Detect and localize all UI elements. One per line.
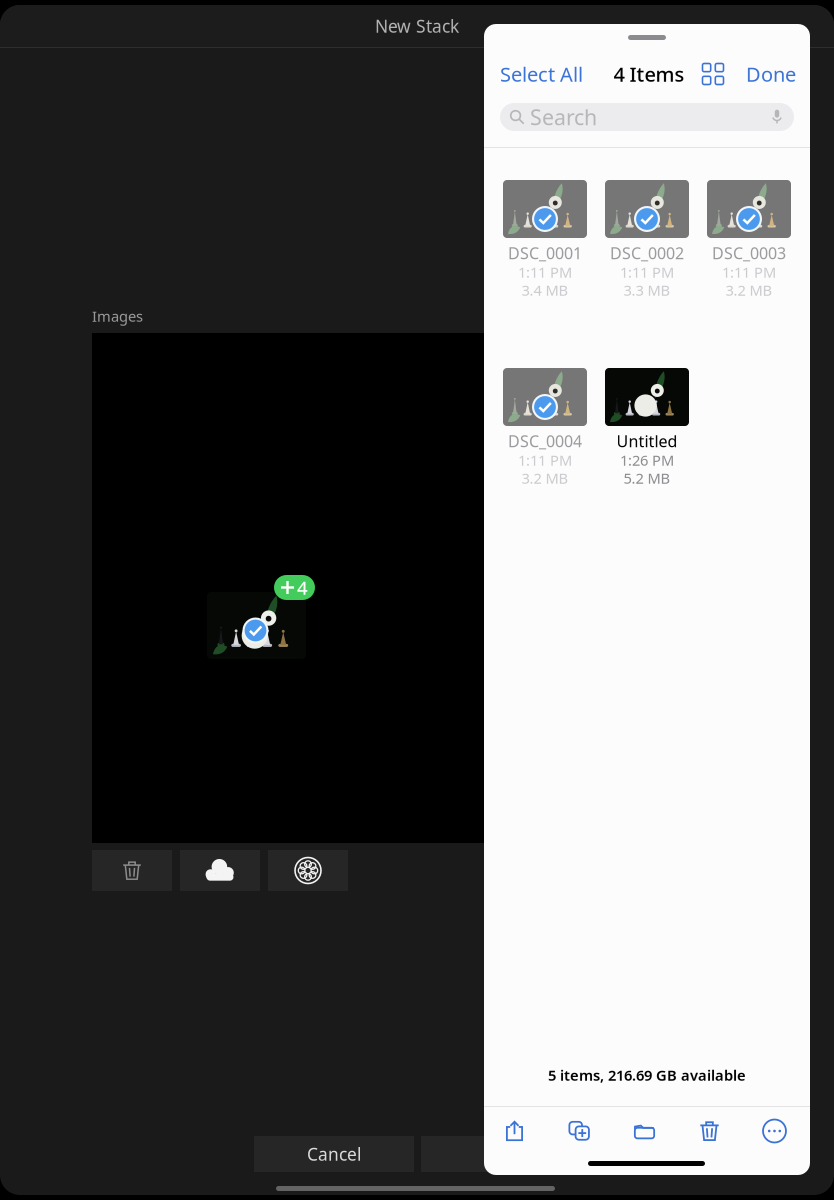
button[interactable]: Effects (268, 850, 348, 891)
button[interactable]: More (742, 1107, 807, 1155)
button[interactable]: Move (612, 1107, 677, 1155)
staticText: Search (530, 103, 597, 131)
staticText: Done (746, 61, 796, 87)
staticText: 3.2 MB (521, 468, 568, 488)
staticText: New Stack (375, 14, 459, 37)
staticText: 1:11 PM (722, 262, 776, 282)
button[interactable]: Cancel (254, 1136, 414, 1172)
staticText: Cancel (307, 1142, 361, 1165)
button[interactable]: Upload to iCloud (180, 850, 260, 891)
staticText: 1:11 PM (518, 450, 572, 470)
staticText: DSC_0003 (712, 242, 786, 264)
staticText: 5 items, 216.69 GB available (548, 1065, 746, 1085)
button[interactable]: DSC_0002 (596, 180, 698, 297)
staticText: Images (92, 306, 143, 326)
button[interactable]: New Document (547, 1107, 612, 1155)
button[interactable]: DSC_0001 (494, 180, 596, 297)
button[interactable]: Delete (92, 850, 172, 891)
staticText: 3.3 MB (623, 280, 670, 300)
button[interactable]: Share (482, 1107, 547, 1155)
staticText: DSC_0001 (508, 242, 582, 264)
button[interactable]: Save (421, 1136, 581, 1172)
staticText: Select All (500, 61, 583, 87)
staticText: 3.2 MB (725, 280, 772, 300)
staticText: 5.2 MB (623, 468, 670, 488)
button[interactable]: Change view (698, 59, 728, 89)
staticText: 3.4 MB (521, 280, 568, 300)
button[interactable]: Delete (677, 1107, 742, 1155)
staticText: Untitled (616, 430, 677, 452)
button[interactable]: Search (500, 103, 794, 131)
button[interactable]: DSC_0004 (494, 368, 596, 485)
staticText: 4 (297, 575, 308, 600)
staticText: 4 Items (613, 61, 684, 87)
button[interactable]: Done (736, 59, 796, 89)
button[interactable]: Select All (500, 59, 600, 89)
button[interactable]: Untitled (596, 368, 698, 485)
staticText: 1:11 PM (518, 262, 572, 282)
staticText: 1:26 PM (620, 450, 674, 470)
staticText: DSC_0002 (610, 242, 684, 264)
button[interactable]: DSC_0003 (698, 180, 800, 297)
staticText: DSC_0004 (508, 430, 582, 452)
staticText: 1:11 PM (620, 262, 674, 282)
